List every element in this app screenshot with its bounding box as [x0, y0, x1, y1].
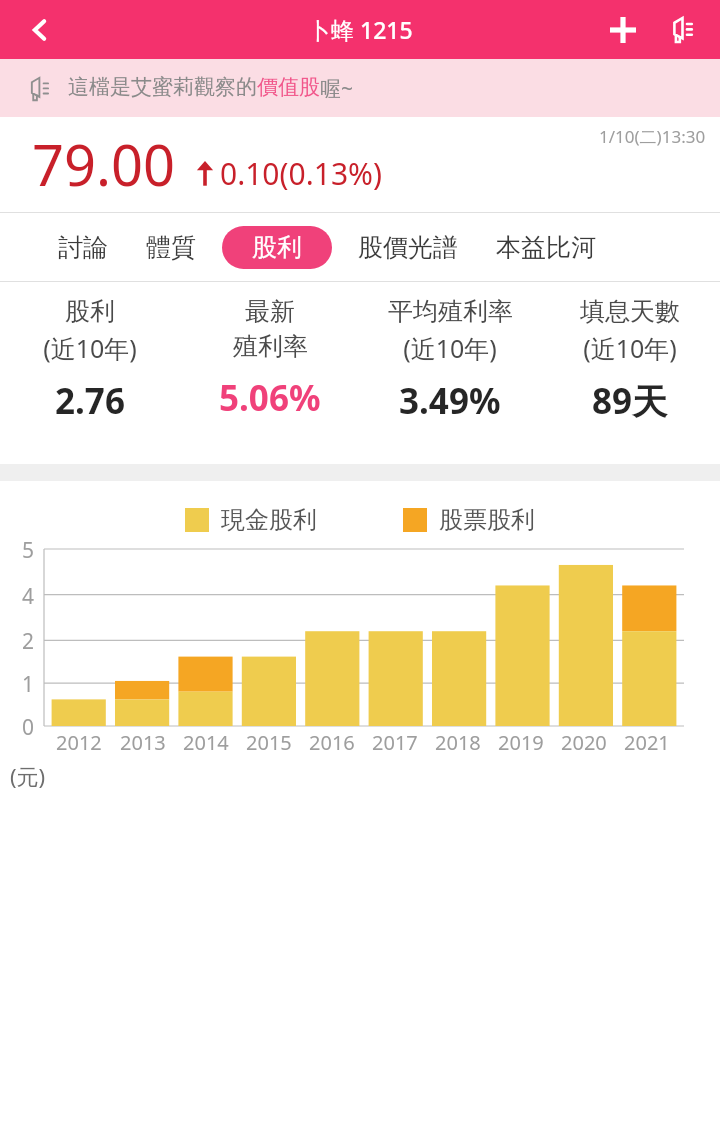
button[interactable]: 本益比河 [484, 224, 608, 271]
button[interactable]: Add [594, 1, 652, 59]
staticText: 討論 [58, 232, 108, 263]
staticText: (近10年) [583, 331, 677, 365]
staticText: 1 [22, 670, 35, 699]
staticText: 填息天數 [580, 296, 680, 327]
staticText: 平均殖利率 [388, 296, 513, 327]
button[interactable]: Announcements [652, 1, 710, 59]
staticText: 4 [22, 582, 35, 611]
staticText: 2019 [498, 729, 544, 756]
staticText: 股價光譜 [358, 232, 458, 263]
staticText: 最新 [245, 296, 295, 327]
button[interactable]: 討論 [46, 224, 120, 271]
button[interactable]: 體質 [134, 224, 208, 271]
button[interactable]: 股票股利 [403, 505, 535, 535]
staticText: 2016 [309, 729, 355, 756]
staticText: 0.10(0.13%) [220, 153, 382, 194]
staticText: 3.49% [399, 377, 501, 425]
button[interactable]: Back [0, 0, 80, 59]
staticText: 2017 [372, 729, 418, 756]
staticText: 0 [22, 713, 35, 742]
button[interactable]: 股價光譜 [346, 224, 470, 271]
staticText: 股利 [252, 232, 302, 263]
staticText: 5.06% [219, 374, 321, 422]
button[interactable]: 股利 [0, 296, 180, 425]
staticText: 2014 [183, 729, 229, 756]
button[interactable]: 填息天數 [540, 296, 720, 425]
staticText: 2015 [246, 729, 292, 756]
staticText: 價值股 [257, 74, 320, 100]
staticText: 1/10(二)13:30 [599, 125, 706, 148]
staticText: 這檔是艾蜜莉觀察的 [68, 74, 257, 100]
staticText: 2 [22, 627, 35, 656]
staticText: 喔~ [320, 74, 354, 103]
staticText: 89天 [592, 377, 668, 425]
staticText: 2013 [120, 729, 166, 756]
staticText: 5 [22, 536, 35, 565]
staticText: 2020 [561, 729, 607, 756]
staticText: 79.00 [32, 126, 176, 202]
staticText: 2018 [435, 729, 481, 756]
staticText: 體質 [146, 232, 196, 263]
button[interactable]: 最新 [180, 296, 360, 422]
staticText: 2021 [624, 729, 670, 756]
staticText: 股票股利 [439, 505, 535, 535]
button[interactable]: 平均殖利率 [360, 296, 540, 425]
staticText: 卜蜂 1215 [308, 14, 413, 45]
staticText: 殖利率 [233, 331, 308, 362]
staticText: 現金股利 [221, 505, 317, 535]
staticText: 2012 [56, 729, 102, 756]
button[interactable]: 股利 [222, 226, 332, 269]
staticText: (元) [10, 761, 46, 791]
staticText: (近10年) [403, 331, 497, 365]
staticText: 股利 [65, 296, 115, 327]
staticText: 本益比河 [496, 232, 596, 263]
button[interactable]: 這檔是艾蜜莉觀察的 [0, 59, 720, 117]
staticText: 2.76 [55, 377, 125, 425]
button[interactable]: 現金股利 [185, 505, 317, 535]
staticText: (近10年) [43, 331, 137, 365]
